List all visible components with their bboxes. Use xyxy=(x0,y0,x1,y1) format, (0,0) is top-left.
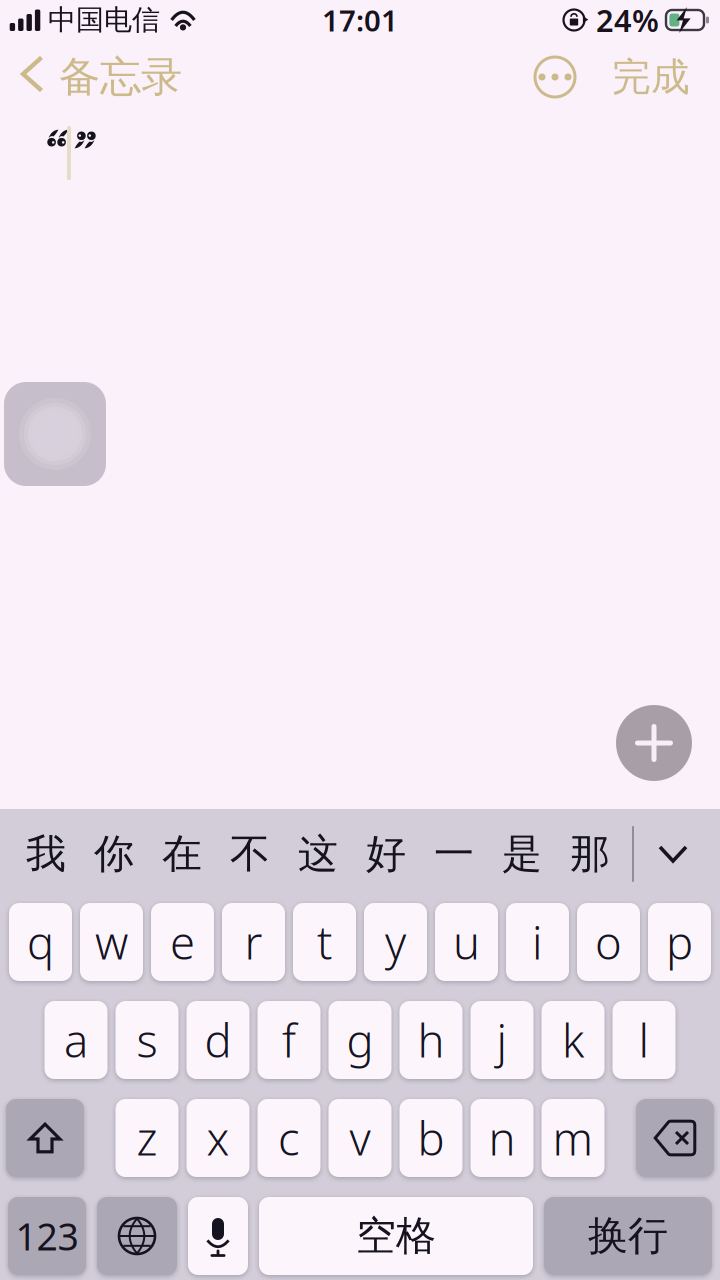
button[interactable]: 一 xyxy=(420,812,488,896)
staticText: j xyxy=(496,1010,507,1070)
staticText: n xyxy=(488,1108,515,1168)
button[interactable]: 这 xyxy=(284,812,352,896)
staticText: x xyxy=(206,1108,229,1168)
staticText: 备忘录 xyxy=(59,52,182,102)
button[interactable]: 换行 xyxy=(544,1197,712,1275)
button[interactable]: b xyxy=(399,1099,462,1177)
staticText: 我 xyxy=(26,829,66,878)
staticText: 一 xyxy=(434,829,474,878)
button[interactable]: x xyxy=(186,1099,249,1177)
button[interactable]: Shift xyxy=(6,1099,84,1177)
staticText: l xyxy=(638,1010,649,1070)
button[interactable]: 空格 xyxy=(259,1197,533,1275)
button[interactable]: 好 xyxy=(352,812,420,896)
button[interactable]: 完成 xyxy=(584,45,720,109)
staticText: 24% xyxy=(596,0,659,40)
button[interactable]: y xyxy=(364,903,427,981)
button[interactable]: Numbers xyxy=(8,1197,86,1275)
staticText: 好 xyxy=(366,829,406,878)
staticText: 你 xyxy=(94,829,134,878)
button[interactable]: m xyxy=(541,1099,604,1177)
button[interactable]: 你 xyxy=(80,812,148,896)
button[interactable]: Delete xyxy=(636,1099,714,1177)
staticText: p xyxy=(666,912,693,972)
staticText: y xyxy=(385,912,406,972)
staticText: v xyxy=(349,1108,370,1168)
button[interactable]: j xyxy=(470,1001,533,1079)
button[interactable]: g xyxy=(328,1001,391,1079)
staticText: f xyxy=(282,1010,296,1070)
button[interactable]: v xyxy=(328,1099,391,1177)
button[interactable]: c xyxy=(257,1099,320,1177)
button[interactable]: n xyxy=(470,1099,533,1177)
button[interactable]: f xyxy=(257,1001,320,1079)
staticText: 空格 xyxy=(356,1211,436,1260)
button[interactable]: 备忘录 xyxy=(0,44,182,110)
staticText: e xyxy=(170,912,195,972)
staticText: 不 xyxy=(230,829,270,878)
staticText: t xyxy=(317,912,332,972)
staticText: r xyxy=(244,912,262,972)
staticText: s xyxy=(136,1010,157,1070)
button[interactable]: q xyxy=(9,903,72,981)
staticText: 在 xyxy=(162,829,202,878)
button[interactable]: Attachment xyxy=(4,382,106,486)
button[interactable]: r xyxy=(222,903,285,981)
staticText: 这 xyxy=(298,829,338,878)
staticText: 是 xyxy=(502,829,542,878)
staticText: 完成 xyxy=(612,53,690,101)
staticText: c xyxy=(278,1108,300,1168)
button[interactable]: u xyxy=(435,903,498,981)
button[interactable]: w xyxy=(80,903,143,981)
button[interactable]: d xyxy=(186,1001,249,1079)
staticText: b xyxy=(417,1108,444,1168)
staticText: 中国电信 xyxy=(48,3,160,37)
button[interactable]: More xyxy=(525,47,584,107)
staticText: 换行 xyxy=(588,1211,668,1260)
button[interactable]: z xyxy=(115,1099,178,1177)
staticText: a xyxy=(64,1010,88,1070)
button[interactable]: e xyxy=(151,903,214,981)
button[interactable]: t xyxy=(293,903,356,981)
button[interactable]: 是 xyxy=(488,812,556,896)
button[interactable]: k xyxy=(541,1001,604,1079)
button[interactable]: l xyxy=(612,1001,675,1079)
staticText: w xyxy=(95,912,128,972)
staticText: h xyxy=(417,1010,444,1070)
staticText: i xyxy=(532,912,543,972)
staticText: d xyxy=(204,1010,231,1070)
button[interactable]: Hide keyboard xyxy=(634,812,712,896)
staticText: q xyxy=(27,912,54,972)
button[interactable]: 不 xyxy=(216,812,284,896)
staticText: o xyxy=(595,912,622,972)
button[interactable]: Next keyboard xyxy=(97,1197,177,1275)
button[interactable]: o xyxy=(577,903,640,981)
staticText: g xyxy=(346,1010,373,1070)
staticText: 那 xyxy=(570,829,610,878)
button[interactable]: s xyxy=(115,1001,178,1079)
button[interactable]: a xyxy=(44,1001,107,1079)
staticText: k xyxy=(562,1010,584,1070)
button[interactable]: Dictate xyxy=(188,1197,248,1275)
staticText: u xyxy=(453,912,480,972)
button[interactable]: 在 xyxy=(148,812,216,896)
button[interactable]: 那 xyxy=(556,812,624,896)
staticText: 17:01 xyxy=(322,0,398,39)
staticText: m xyxy=(552,1108,593,1168)
staticText: z xyxy=(136,1108,157,1168)
button[interactable]: p xyxy=(648,903,711,981)
button[interactable]: i xyxy=(506,903,569,981)
button[interactable]: 我 xyxy=(12,812,80,896)
staticText: 123 xyxy=(15,1211,78,1261)
button[interactable]: Add xyxy=(616,705,692,781)
button[interactable]: h xyxy=(399,1001,462,1079)
